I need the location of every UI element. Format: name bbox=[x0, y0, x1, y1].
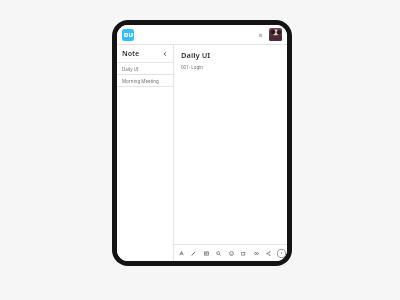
button[interactable]: Notifications bbox=[254, 29, 266, 41]
button[interactable]: Table bbox=[200, 247, 212, 259]
button[interactable]: Account bbox=[269, 28, 282, 41]
button[interactable]: Folder bbox=[237, 247, 249, 259]
staticText: Note bbox=[122, 49, 140, 59]
button[interactable]: Daily UI bbox=[117, 63, 173, 74]
button[interactable]: Sticker bbox=[225, 247, 237, 259]
staticText: DU bbox=[124, 31, 133, 39]
button[interactable]: Share bbox=[262, 247, 274, 259]
button[interactable]: Text format bbox=[175, 247, 187, 259]
staticText: Morning Meeting bbox=[122, 78, 159, 84]
staticText: 001- Login bbox=[181, 64, 204, 70]
button[interactable]: Eraser bbox=[212, 247, 224, 259]
button[interactable]: Link bbox=[250, 247, 262, 259]
button[interactable]: DU bbox=[122, 29, 134, 41]
staticText: Daily UI bbox=[122, 66, 139, 72]
staticText: Daily UI bbox=[181, 50, 211, 60]
button[interactable]: Morning Meeting bbox=[117, 75, 173, 86]
button[interactable]: Pen bbox=[187, 247, 199, 259]
button[interactable]: More options bbox=[275, 247, 287, 259]
button[interactable]: Back bbox=[160, 49, 169, 58]
